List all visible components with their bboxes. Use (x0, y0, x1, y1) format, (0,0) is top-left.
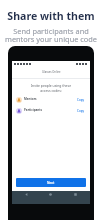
staticText: Glasses Online (42, 70, 61, 74)
button[interactable]: Copy (76, 97, 86, 103)
staticText: Participants (24, 108, 43, 112)
button[interactable]: Mentors (16, 97, 86, 103)
button[interactable]: Next (16, 178, 86, 187)
button[interactable]: Back (24, 192, 29, 197)
staticText: Send participants and mentors your uniqu… (2, 26, 100, 44)
button[interactable]: Home (48, 192, 53, 197)
staticText: Next (47, 181, 55, 185)
staticText: Share with them (7, 9, 95, 23)
button[interactable]: Recents (73, 192, 78, 197)
button[interactable]: Copy (76, 108, 86, 114)
staticText: Mentors (24, 97, 37, 101)
button[interactable]: Participants (16, 108, 86, 114)
staticText: Invite people using these access codes: (12, 83, 90, 93)
